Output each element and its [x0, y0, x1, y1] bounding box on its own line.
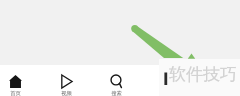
button[interactable]: Search — [93, 67, 139, 96]
other: Home — [9, 75, 22, 88]
button[interactable]: Home — [0, 67, 38, 96]
staticText: 视频 — [61, 90, 72, 96]
button[interactable]: Video — [43, 67, 89, 96]
other: Video — [60, 75, 73, 88]
staticText: 搜索 — [111, 90, 122, 96]
other: Search — [110, 75, 123, 88]
button[interactable]: Profile — [193, 67, 239, 96]
staticText: 软件技巧 — [169, 64, 237, 85]
staticText: 首页 — [10, 90, 21, 96]
other: Messages — [160, 75, 173, 88]
other: Profile — [210, 75, 223, 88]
button[interactable]: Messages — [143, 67, 189, 96]
